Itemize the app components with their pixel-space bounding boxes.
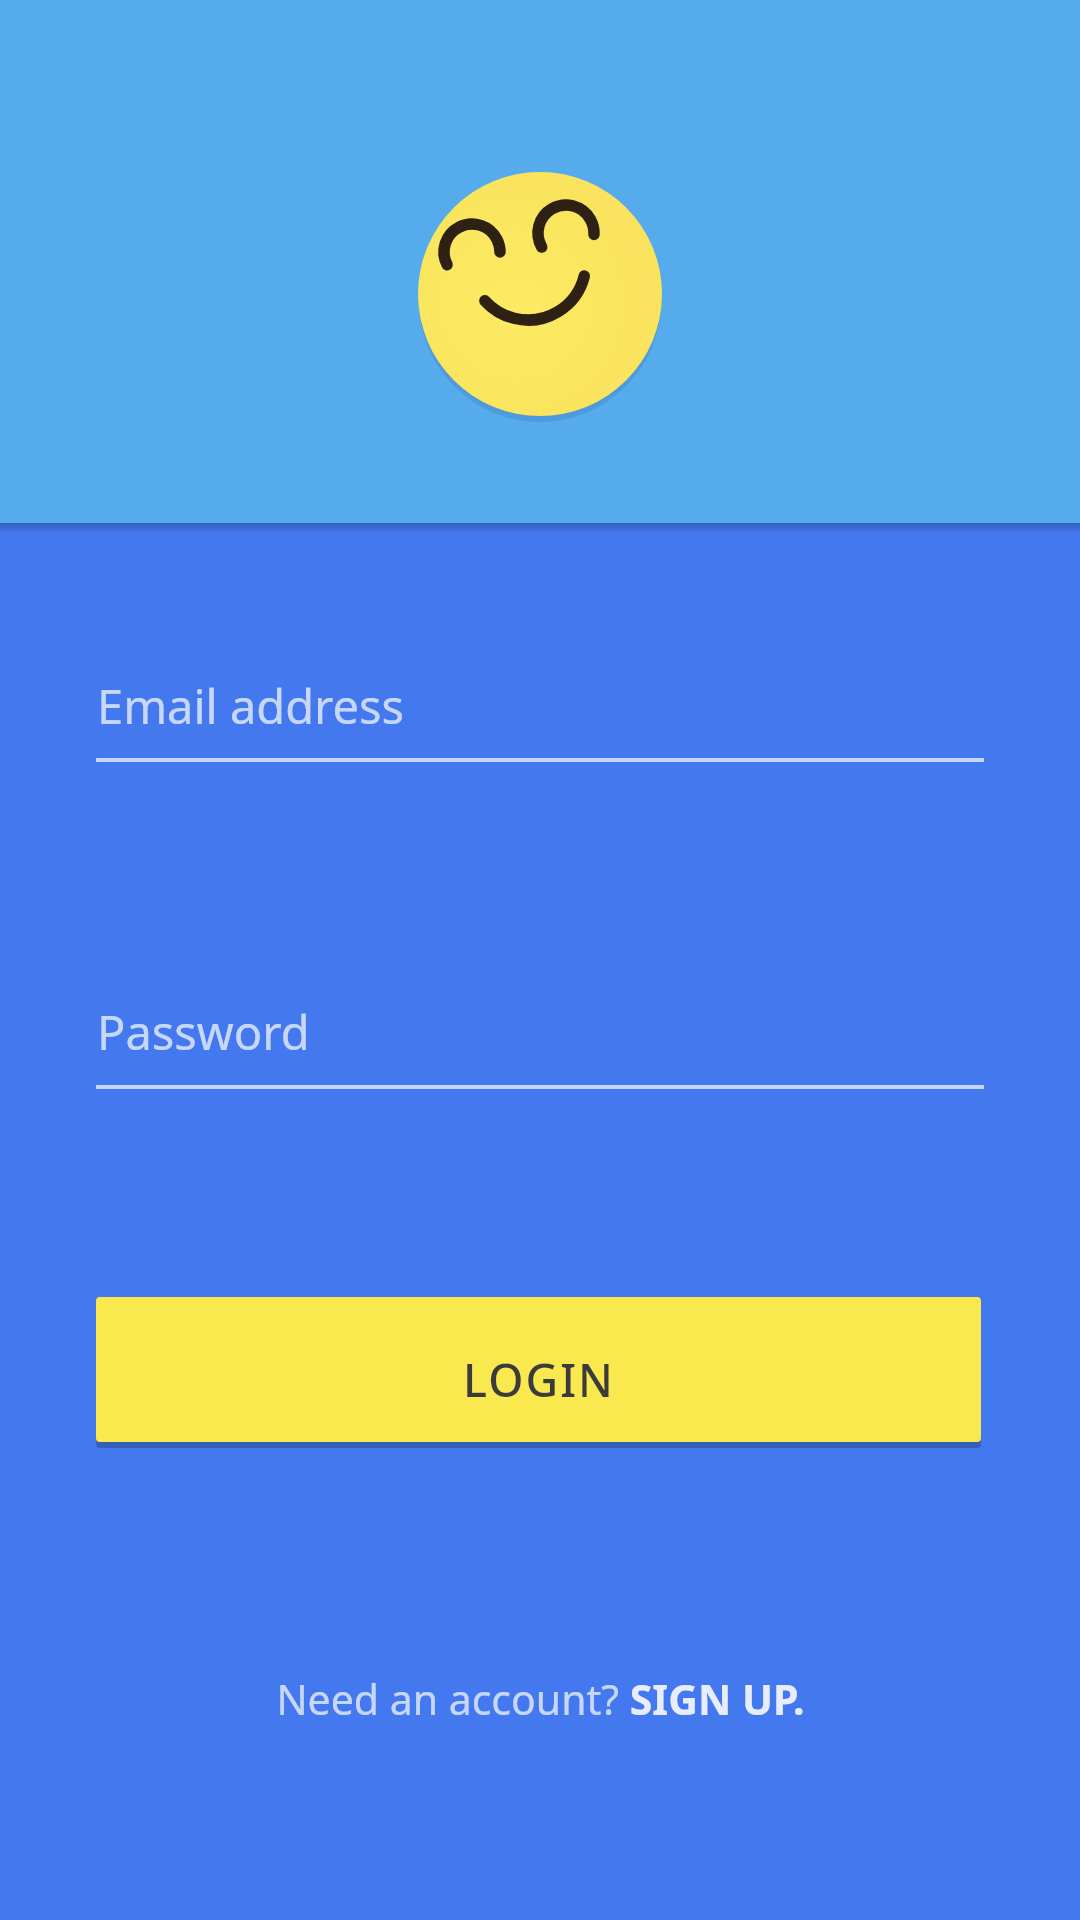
staticText: Password	[97, 1000, 310, 1064]
staticText: Email address	[97, 674, 405, 738]
staticText: Need an account? SIGN UP.	[276, 1671, 805, 1727]
button[interactable]: Need an account? SIGN UP.	[0, 1671, 1080, 1727]
button[interactable]: LOGIN	[96, 1297, 981, 1442]
staticText: LOGIN	[463, 1349, 615, 1410]
